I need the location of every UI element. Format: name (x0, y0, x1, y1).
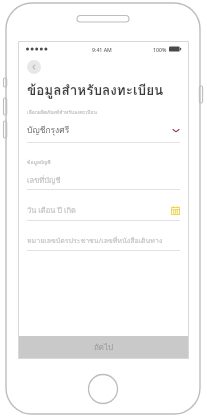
staticText: บัญชีกรุงศรี (27, 123, 70, 137)
button[interactable]: Back (27, 60, 41, 74)
staticText: หมายเลขบัตรประชาชน/เลขที่หนังสือเดินทาง (27, 235, 163, 246)
staticText: 9:41 AM (92, 46, 112, 53)
staticText: ถัดไป (94, 341, 114, 354)
button[interactable]: ถัดไป (19, 336, 188, 358)
button[interactable]: วัน เดือน ปี เกิด (27, 204, 180, 216)
staticText: ข้อมูลบัญชี (27, 158, 51, 166)
staticText: ข้อมูลสำหรับลงทะเบียน (27, 79, 164, 100)
other: Pick date (171, 206, 180, 215)
button[interactable]: หมายเลขบัตรประชาชน/เลขที่หนังสือเดินทาง (27, 235, 180, 246)
staticText: เลขที่บัญชี (27, 174, 61, 185)
button[interactable]: เลขที่บัญชี (27, 174, 180, 185)
staticText: เลือกผลิตภัณฑ์สำหรับลงทะเบียน (27, 108, 97, 116)
staticText: วัน เดือน ปี เกิด (27, 204, 76, 216)
button[interactable]: บัญชีกรุงศรี (27, 123, 180, 137)
staticText: 100% (153, 46, 167, 53)
